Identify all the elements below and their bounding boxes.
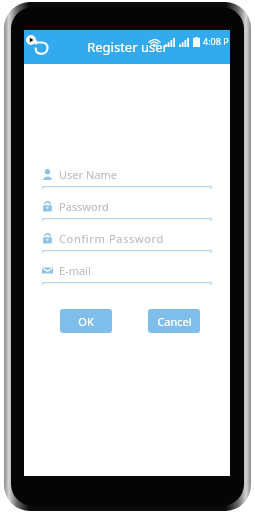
staticText: User Name	[59, 167, 117, 182]
button[interactable]: Back	[24, 30, 58, 64]
button[interactable]: User Name	[42, 166, 212, 189]
staticText: Confirm Password	[59, 231, 165, 246]
button[interactable]: Password	[42, 198, 212, 221]
staticText: E-mail	[59, 263, 91, 278]
staticText: OK	[78, 314, 94, 329]
button[interactable]: Confirm Password	[42, 230, 212, 253]
button[interactable]: OK	[60, 309, 112, 333]
button[interactable]: Cancel	[148, 309, 200, 333]
button[interactable]: E-mail	[42, 262, 212, 285]
staticText: Password	[59, 199, 109, 214]
staticText: Cancel	[157, 314, 192, 329]
staticText: 4:08 P	[203, 35, 229, 47]
staticText: Register user	[87, 38, 168, 56]
